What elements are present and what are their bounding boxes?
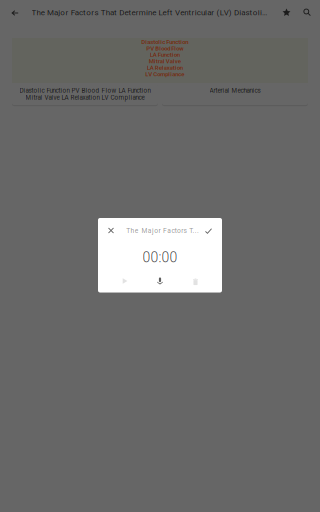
button[interactable]: Close <box>100 219 122 241</box>
staticText: LA Function <box>150 51 180 58</box>
button[interactable]: Record <box>148 270 172 292</box>
button[interactable]: Bookmark <box>276 0 297 25</box>
button[interactable]: Diastolic Function PV Blood Flow LA Func… <box>12 84 158 105</box>
staticText: The Major Factors That Determine Left Ve… <box>31 8 267 17</box>
staticText: Diastolic Function PV Blood Flow LA Func… <box>19 87 150 94</box>
staticText: Arterial Mechanics <box>209 87 260 94</box>
staticText: LA Relaxation <box>147 64 183 71</box>
button[interactable]: Play <box>113 270 137 292</box>
button[interactable]: Search <box>297 0 318 24</box>
staticText: LV Compliance <box>145 71 184 78</box>
button[interactable]: Arterial Mechanics <box>162 84 308 105</box>
staticText: Mitral Valve <box>149 58 181 65</box>
button[interactable]: Back <box>4 0 26 26</box>
button[interactable]: Delete <box>183 270 207 292</box>
staticText: The Major Factors T... <box>126 227 199 234</box>
staticText: PV Blood Flow <box>146 45 183 52</box>
staticText: Mitral Valve LA Relaxation LV Compliance <box>25 94 144 101</box>
button[interactable]: Save <box>197 220 219 242</box>
staticText: Diastolic Function <box>141 38 188 45</box>
staticText: 00:00 <box>142 249 177 266</box>
